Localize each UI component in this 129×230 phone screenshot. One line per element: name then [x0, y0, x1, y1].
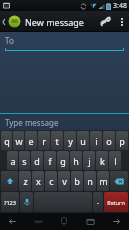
button[interactable]: z [19, 171, 31, 191]
staticText: x [36, 175, 41, 187]
staticText: Return [107, 199, 125, 206]
staticText: t [55, 135, 59, 147]
button[interactable]: Period [93, 192, 103, 212]
button[interactable]: Attach [95, 11, 115, 32]
button[interactable]: Voice input [20, 192, 33, 212]
staticText: q [4, 135, 10, 147]
button[interactable]: j [83, 151, 95, 170]
staticText: m [99, 175, 108, 187]
staticText: . [97, 197, 99, 207]
staticText: o [106, 135, 112, 147]
staticText: 3:48 [113, 1, 127, 11]
staticText: d [34, 155, 40, 167]
button[interactable]: i [90, 131, 102, 150]
button[interactable]: Back [0, 213, 25, 230]
staticText: c [49, 175, 54, 187]
button[interactable]: n [84, 171, 96, 191]
staticText: r [42, 135, 46, 147]
staticText: a [10, 155, 16, 167]
staticText: j [88, 155, 91, 167]
button[interactable]: k [96, 151, 108, 170]
staticText: l [114, 155, 117, 167]
staticText: w [15, 135, 23, 147]
button[interactable]: p [116, 131, 128, 150]
staticText: k [100, 155, 105, 167]
staticText: u [80, 135, 86, 147]
staticText: s [22, 155, 27, 167]
button[interactable]: l [109, 151, 121, 170]
button[interactable]: a [7, 151, 18, 170]
button[interactable]: Space [34, 192, 92, 212]
staticText: p [119, 135, 125, 147]
button[interactable]: y [64, 131, 76, 150]
button[interactable]: q [1, 131, 12, 150]
button[interactable]: Symbols [1, 192, 19, 212]
button[interactable]: Return [104, 192, 128, 212]
button[interactable]: v [58, 171, 70, 191]
button[interactable]: g [57, 151, 69, 170]
button[interactable]: m [97, 171, 109, 191]
button[interactable]: More options [115, 11, 129, 32]
staticText: z [23, 175, 28, 187]
staticText: h [73, 155, 79, 167]
button[interactable]: h [70, 151, 82, 170]
button[interactable]: x [32, 171, 44, 191]
button[interactable]: e [25, 131, 37, 150]
button[interactable]: u [77, 131, 89, 150]
button[interactable]: w [13, 131, 24, 150]
button[interactable]: Hide keyboard [51, 213, 77, 230]
staticText: f [48, 155, 52, 167]
button[interactable]: d [31, 151, 43, 170]
button[interactable]: Type message [0, 114, 129, 130]
staticText: g [60, 155, 66, 167]
staticText: e [28, 135, 34, 147]
button[interactable]: Shift [1, 171, 18, 191]
button[interactable]: To [0, 32, 129, 51]
staticText: b [74, 175, 80, 187]
button[interactable]: Recent apps history [25, 213, 51, 230]
button[interactable]: b [71, 171, 83, 191]
staticText: i [95, 135, 98, 147]
button[interactable]: Delete [110, 171, 128, 191]
staticText: Type message [5, 117, 59, 128]
staticText: New message [25, 16, 84, 28]
button[interactable]: r [38, 131, 50, 150]
staticText: v [62, 175, 67, 187]
button[interactable]: Recent apps [77, 213, 103, 230]
button[interactable]: f [44, 151, 56, 170]
staticText: y [68, 135, 73, 147]
staticText: n [87, 175, 93, 187]
button[interactable]: o [103, 131, 115, 150]
staticText: To [5, 35, 14, 46]
button[interactable]: Navigate up [0, 11, 23, 32]
staticText: ?123 [4, 199, 16, 206]
button[interactable]: Forward [103, 213, 129, 230]
button[interactable]: c [45, 171, 57, 191]
button[interactable]: s [19, 151, 30, 170]
button[interactable]: t [51, 131, 63, 150]
